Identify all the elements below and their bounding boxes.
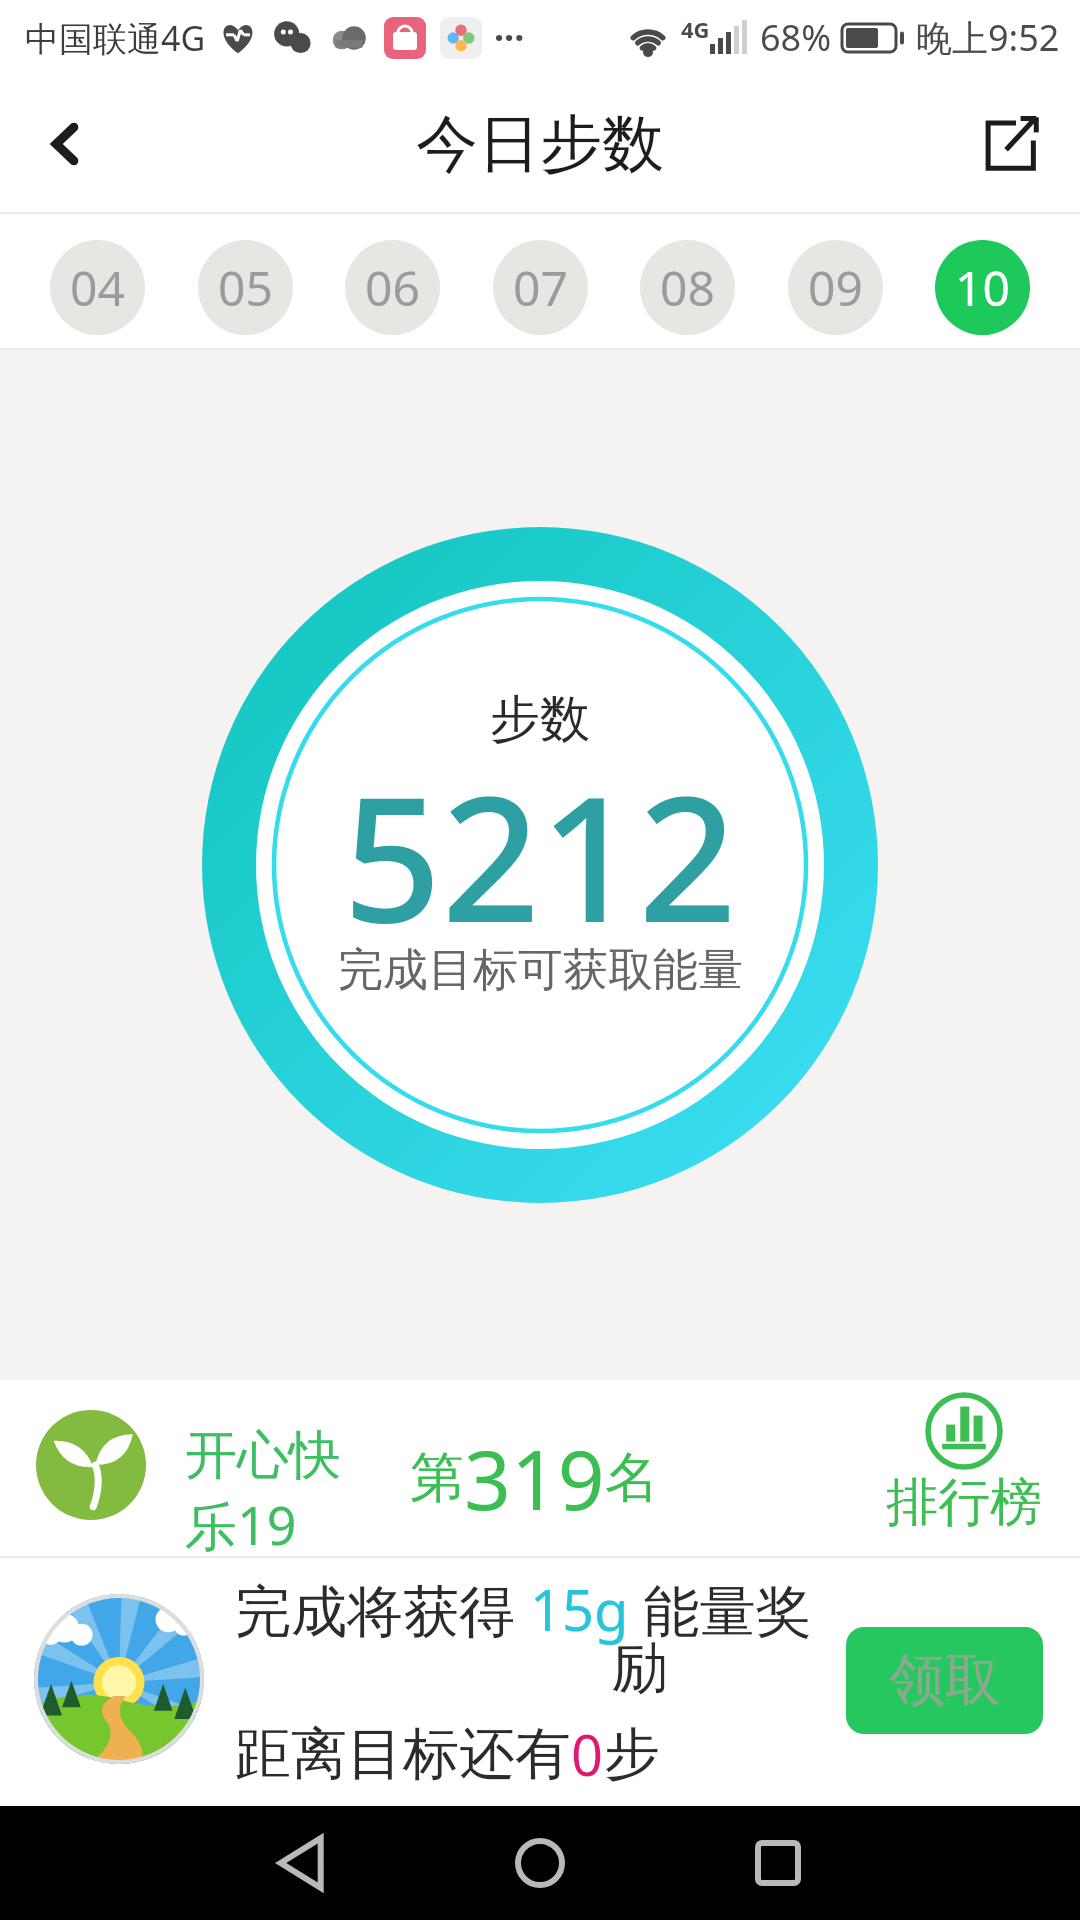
staticText: 完成目标可获取能量	[338, 942, 743, 999]
staticText: 04	[70, 255, 125, 320]
staticText: 名	[605, 1444, 659, 1512]
staticText: 励	[612, 1633, 668, 1704]
staticText: 步	[604, 1719, 660, 1790]
button[interactable]: 领取	[846, 1627, 1043, 1734]
button[interactable]	[30, 109, 100, 179]
button[interactable]: 09	[788, 240, 883, 335]
staticText: 晚上9:52	[916, 13, 1060, 62]
staticText: 319	[464, 1422, 605, 1534]
staticText: 步数	[490, 688, 590, 751]
staticText: 05	[218, 255, 273, 320]
button[interactable]: 10	[935, 240, 1030, 335]
staticText: 5212	[343, 738, 737, 972]
staticText: 距离目标还有	[235, 1719, 571, 1790]
staticText: ···	[494, 13, 525, 62]
staticText: 06	[365, 255, 420, 320]
button[interactable]: 07	[493, 240, 588, 335]
staticText: 09	[808, 255, 863, 320]
button[interactable]	[250, 1806, 350, 1920]
staticText: 第	[410, 1444, 464, 1512]
staticText: 68%	[760, 13, 832, 62]
staticText: 08	[660, 255, 715, 320]
button[interactable]	[490, 1806, 590, 1920]
button[interactable]	[974, 109, 1044, 179]
staticText: 中国联通4G	[25, 15, 206, 61]
staticText: 乐19	[185, 1489, 297, 1560]
button[interactable]: 04	[50, 240, 145, 335]
staticText: 07	[513, 255, 568, 320]
button[interactable]: 排行榜	[886, 1392, 1042, 1536]
staticText: 能量奖	[629, 1571, 812, 1647]
staticText: 4G	[681, 14, 710, 44]
staticText: 开心快	[185, 1423, 341, 1489]
staticText: 排行榜	[886, 1470, 1042, 1536]
staticText: 10	[955, 255, 1010, 320]
button[interactable]: 06	[345, 240, 440, 335]
button[interactable]: 08	[640, 240, 735, 335]
staticText: 今日步数	[416, 105, 664, 183]
staticText: 完成将获得	[235, 1571, 530, 1647]
staticText: 15g	[530, 1571, 629, 1647]
staticText: 0	[571, 1716, 604, 1792]
staticText: 领取	[889, 1645, 1001, 1716]
button[interactable]: 05	[198, 240, 293, 335]
button[interactable]	[728, 1806, 828, 1920]
